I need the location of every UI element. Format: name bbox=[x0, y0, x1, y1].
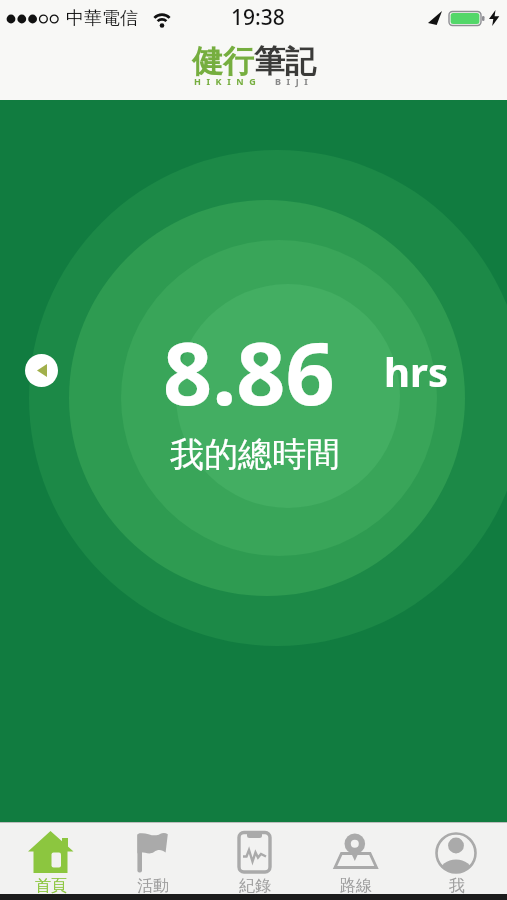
button[interactable]: 首頁 bbox=[0, 823, 102, 894]
staticText: 我 bbox=[449, 876, 465, 894]
button[interactable]: 路線 bbox=[305, 823, 406, 894]
staticText: 首頁 bbox=[35, 876, 67, 894]
staticText: 活動 bbox=[137, 876, 169, 894]
button[interactable] bbox=[25, 354, 58, 387]
staticText: 8.86 bbox=[163, 313, 335, 430]
staticText: 健行 bbox=[192, 42, 254, 81]
staticText: hrs bbox=[384, 344, 448, 398]
staticText: 中華電信 bbox=[66, 7, 138, 30]
button[interactable]: 我 bbox=[406, 823, 507, 894]
staticText: 我的總時間 bbox=[170, 433, 340, 476]
button[interactable]: 活動 bbox=[102, 823, 204, 894]
staticText: 19:38 bbox=[231, 3, 285, 32]
staticText: HIKING bbox=[194, 75, 262, 87]
button[interactable]: 紀錄 bbox=[204, 823, 305, 894]
staticText: BIJI bbox=[275, 75, 314, 87]
staticText: 紀錄 bbox=[239, 876, 271, 894]
staticText: 路線 bbox=[340, 876, 372, 894]
staticText: 筆記 bbox=[254, 42, 316, 81]
